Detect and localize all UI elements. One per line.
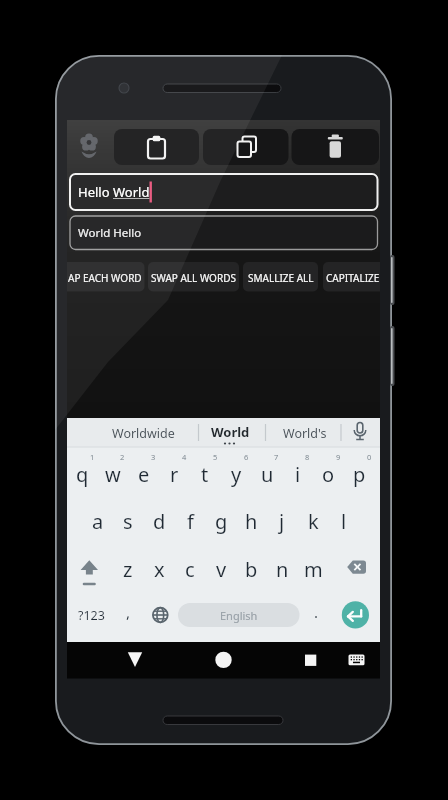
staticText: a [92, 508, 104, 535]
staticText: x [154, 556, 165, 583]
button[interactable]: d [144, 506, 174, 536]
button[interactable] [336, 599, 369, 632]
button[interactable]: p [344, 459, 374, 489]
staticText: 5 [213, 452, 218, 462]
staticText: World [113, 183, 150, 201]
button[interactable]: v [206, 554, 236, 584]
button[interactable]: x [144, 554, 174, 584]
button[interactable]: t [190, 459, 220, 489]
staticText: World Hello [78, 225, 142, 241]
staticText: 6 [244, 452, 249, 462]
button[interactable]: CAPITALIZE [324, 263, 381, 292]
button[interactable]: a [83, 506, 113, 536]
staticText: SMALLIZE ALL [248, 271, 314, 285]
button[interactable]: h [236, 506, 266, 536]
button[interactable]: j [267, 506, 297, 536]
button[interactable] [203, 129, 289, 165]
staticText: d [153, 508, 166, 535]
staticText: World [211, 423, 250, 441]
button[interactable] [292, 129, 380, 165]
button[interactable]: y [221, 459, 251, 489]
button[interactable]: Hello [78, 182, 318, 202]
button[interactable] [178, 603, 299, 627]
button[interactable] [345, 420, 375, 446]
button[interactable] [114, 129, 199, 165]
staticText: s [123, 508, 133, 535]
staticText: 0 [367, 452, 372, 462]
staticText: 1 [90, 452, 95, 462]
staticText: l [341, 508, 347, 535]
staticText: 4 [182, 452, 187, 462]
staticText: m [304, 556, 323, 583]
button[interactable]: AP EACH WORD [66, 263, 143, 292]
staticText: r [170, 461, 179, 488]
button[interactable]: n [267, 554, 297, 584]
button[interactable]: k [298, 506, 328, 536]
button[interactable]: l [329, 506, 359, 536]
button[interactable]: e [129, 459, 159, 489]
staticText: k [308, 508, 319, 535]
staticText: e [138, 461, 150, 488]
button[interactable] [146, 601, 174, 629]
button[interactable]: w [98, 459, 128, 489]
staticText: 3 [151, 452, 156, 462]
button[interactable]: World [195, 419, 265, 445]
staticText: f [187, 508, 194, 535]
staticText: Worldwide [112, 425, 175, 442]
button[interactable]: b [236, 554, 266, 584]
staticText: u [261, 461, 274, 488]
staticText: 9 [336, 452, 341, 462]
button[interactable]: World's [270, 420, 340, 446]
button[interactable] [295, 645, 325, 673]
staticText: p [353, 461, 366, 488]
button[interactable] [120, 645, 150, 673]
staticText: English [220, 608, 258, 623]
staticText: v [216, 556, 227, 583]
button[interactable]: ?123 [71, 603, 111, 627]
button[interactable]: f [175, 506, 205, 536]
button[interactable]: g [206, 506, 236, 536]
staticText: z [123, 556, 133, 583]
button[interactable]: m [298, 554, 328, 584]
button[interactable] [208, 645, 238, 673]
staticText: 8 [305, 452, 310, 462]
staticText: i [295, 461, 301, 488]
staticText: World's [283, 425, 327, 442]
button[interactable]: World Hello [78, 224, 318, 242]
staticText: j [279, 508, 285, 535]
staticText: y [231, 461, 242, 488]
staticText: . [314, 602, 319, 622]
button[interactable]: i [283, 459, 313, 489]
staticText: ?123 [78, 607, 105, 624]
button[interactable]: u [252, 459, 282, 489]
button[interactable]: , [117, 597, 139, 627]
button[interactable]: SMALLIZE ALL [243, 263, 318, 292]
button[interactable]: s [113, 506, 143, 536]
staticText: o [322, 461, 335, 488]
button[interactable]: . [305, 597, 327, 627]
staticText: g [215, 508, 228, 535]
staticText: 7 [274, 452, 279, 462]
staticText: c [185, 556, 195, 583]
staticText: , [126, 602, 131, 622]
staticText: Hello [78, 183, 113, 201]
staticText: CAPITALIZE [326, 271, 380, 285]
staticText: AP EACH WORD [68, 271, 142, 285]
staticText: q [76, 461, 89, 488]
button[interactable] [76, 554, 104, 584]
button[interactable]: SWAP ALL WORDS [148, 263, 239, 292]
staticText: b [245, 556, 258, 583]
staticText: 2 [120, 452, 125, 462]
button[interactable]: q [67, 459, 97, 489]
button[interactable]: o [313, 459, 343, 489]
button[interactable] [339, 554, 367, 584]
button[interactable]: c [175, 554, 205, 584]
button[interactable]: r [159, 459, 189, 489]
staticText: n [276, 556, 289, 583]
button[interactable] [340, 645, 370, 673]
staticText: h [245, 508, 258, 535]
staticText: SWAP ALL WORDS [151, 271, 236, 285]
staticText: t [201, 461, 209, 488]
button[interactable]: Worldwide [98, 420, 188, 446]
button[interactable]: z [113, 554, 143, 584]
